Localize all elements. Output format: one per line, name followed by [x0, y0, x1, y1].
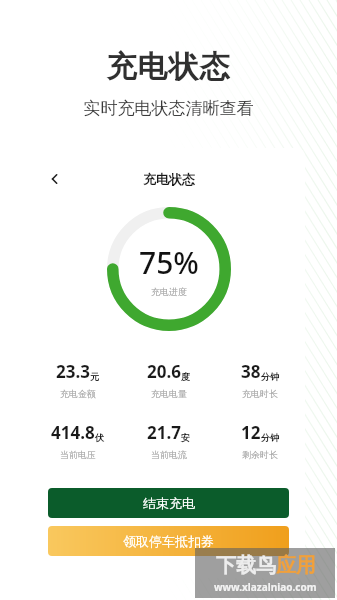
staticText: 下载鸟: [216, 553, 276, 578]
staticText: 充电电量: [151, 388, 187, 399]
staticText: 领取停车抵扣券: [123, 533, 214, 549]
staticText: 414.8: [51, 421, 95, 444]
staticText: 20.6: [147, 360, 181, 383]
staticText: www.xlazalniao.com: [214, 580, 317, 594]
staticText: 分钟: [261, 371, 279, 382]
staticText: 结束充电: [143, 495, 195, 511]
staticText: 充电进度: [151, 286, 187, 297]
staticText: 应用: [276, 553, 316, 578]
staticText: 伏: [95, 432, 104, 443]
staticText: 充电状态: [0, 48, 337, 86]
staticText: 38: [241, 360, 261, 383]
staticText: 12: [241, 421, 261, 444]
button[interactable]: 领取停车抵扣券: [48, 526, 289, 556]
staticText: 充电状态: [143, 171, 195, 187]
staticText: 充电金额: [60, 388, 96, 399]
staticText: 当前电流: [151, 449, 187, 460]
staticText: 充电时长: [242, 388, 278, 399]
staticText: 当前电压: [60, 449, 96, 460]
staticText: 安: [181, 432, 190, 443]
staticText: 实时充电状态清晰查看: [0, 98, 337, 119]
staticText: 分钟: [261, 432, 279, 443]
staticText: 度: [181, 371, 190, 382]
staticText: 21.7: [147, 421, 181, 444]
staticText: 剩余时长: [242, 449, 278, 460]
staticText: 23.3: [56, 360, 90, 383]
staticText: 75%: [139, 242, 199, 283]
button[interactable]: 返回: [42, 166, 68, 192]
staticText: 元: [90, 371, 99, 382]
button[interactable]: 结束充电: [48, 488, 289, 518]
